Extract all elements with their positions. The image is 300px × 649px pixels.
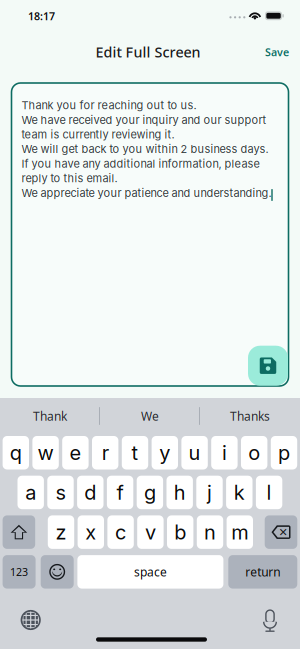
staticText: space (134, 564, 167, 580)
staticText: If you have any additional information, … (21, 157, 259, 170)
staticText: w (38, 441, 54, 465)
staticText: x (85, 520, 96, 544)
button[interactable]: Delete (265, 515, 297, 549)
button[interactable]: x (78, 515, 104, 549)
button[interactable]: z (48, 515, 74, 549)
staticText: team is currently reviewing it. (21, 128, 174, 141)
button[interactable]: d (77, 476, 103, 509)
button[interactable]: m (227, 515, 253, 549)
button[interactable]: n (197, 515, 223, 549)
button[interactable]: p (271, 436, 297, 469)
button[interactable]: i (211, 436, 238, 469)
button[interactable]: g (137, 476, 163, 509)
staticText: p (278, 441, 290, 465)
staticText: 18:17 (28, 9, 55, 23)
staticText: y (159, 441, 170, 465)
button[interactable]: b (167, 515, 193, 549)
staticText: We have received your inquiry and our su… (21, 113, 266, 126)
button[interactable]: Dictation (253, 605, 287, 635)
staticText: z (55, 520, 66, 544)
button[interactable]: Change keyboard (14, 605, 48, 635)
button[interactable]: f (107, 476, 133, 509)
button[interactable]: Shift (3, 515, 35, 549)
staticText: m (231, 520, 248, 544)
staticText: r (102, 441, 109, 465)
staticText: t (131, 441, 138, 465)
button[interactable]: space (77, 555, 223, 589)
button[interactable]: v (137, 515, 164, 549)
button[interactable]: j (196, 476, 223, 509)
staticText: × (279, 522, 287, 542)
staticText: s (55, 480, 65, 505)
staticText: b (174, 520, 186, 544)
button[interactable]: We (101, 399, 199, 433)
button[interactable]: 123 (3, 555, 36, 589)
staticText: n (204, 520, 216, 544)
button[interactable]: Thanks (201, 399, 299, 433)
staticText: Edit Full Screen (95, 42, 200, 62)
staticText: reply to this email. (21, 172, 117, 185)
button[interactable]: o (241, 436, 267, 469)
staticText: v (145, 520, 156, 544)
button[interactable]: k (226, 476, 252, 509)
button[interactable]: Thank (1, 399, 99, 433)
staticText: Save (265, 45, 289, 59)
staticText: j (207, 480, 212, 505)
staticText: Thank you for reaching out to us. (21, 99, 196, 112)
staticText: k (234, 480, 245, 505)
button[interactable]: return (228, 555, 297, 589)
button[interactable]: q (3, 436, 29, 469)
button[interactable]: Save (259, 40, 295, 64)
button[interactable]: Save draft (248, 346, 288, 386)
staticText: o (248, 441, 260, 465)
staticText: q (10, 441, 22, 465)
button[interactable]: t (122, 436, 148, 469)
button[interactable]: l (256, 476, 282, 509)
staticText: i (222, 441, 227, 465)
button[interactable]: Emoji (41, 555, 74, 589)
button[interactable]: a (17, 476, 44, 509)
staticText: d (84, 480, 96, 505)
button[interactable]: y (152, 436, 178, 469)
button[interactable]: u (181, 436, 208, 469)
staticText: l (267, 480, 272, 505)
staticText: u (189, 441, 201, 465)
button[interactable]: s (47, 476, 74, 509)
button[interactable]: r (92, 436, 118, 469)
staticText: h (174, 480, 186, 505)
staticText: e (69, 441, 81, 465)
staticText: We (141, 408, 159, 424)
staticText: return (245, 564, 280, 580)
staticText: a (25, 480, 36, 505)
button[interactable]: c (107, 515, 134, 549)
button[interactable]: w (32, 436, 59, 469)
staticText: c (115, 520, 126, 544)
staticText: Thank (33, 408, 67, 424)
staticText: f (117, 480, 124, 505)
staticText: We will get back to you within 2 busines… (21, 142, 268, 156)
button[interactable]: h (166, 476, 193, 509)
staticText: 123 (10, 565, 28, 579)
staticText: We appreciate your patience and understa… (21, 186, 271, 199)
button[interactable]: e (62, 436, 89, 469)
staticText: g (144, 480, 156, 505)
staticText: Thanks (230, 408, 270, 424)
